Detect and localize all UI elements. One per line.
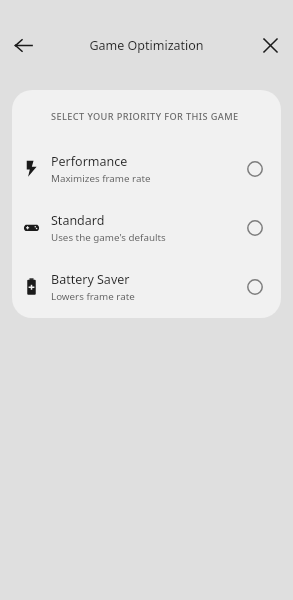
button[interactable]: Standard: [12, 198, 281, 257]
button[interactable]: Back: [6, 28, 40, 62]
staticText: Battery Saver: [51, 271, 130, 288]
staticText: Maximizes frame rate: [51, 172, 151, 185]
button[interactable]: Performance: [12, 139, 281, 198]
staticText: Uses the game's defaults: [51, 231, 166, 244]
staticText: Game Optimization: [89, 37, 204, 54]
staticText: SELECT YOUR PRIORITY FOR THIS GAME: [51, 110, 239, 123]
staticText: Standard: [51, 212, 105, 229]
button[interactable]: Battery Saver: [12, 257, 281, 316]
staticText: Lowers frame rate: [51, 290, 135, 303]
button[interactable]: Close: [253, 28, 287, 62]
staticText: Performance: [51, 153, 128, 170]
